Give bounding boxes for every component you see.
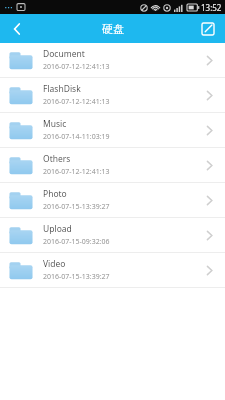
staticText: 2016-07-14-11:03:19 [43,132,110,142]
button[interactable]: Video [0,253,225,287]
staticText: Photo [43,188,67,200]
staticText: 13:52 [201,2,222,13]
button[interactable]: Photo [0,183,225,217]
button[interactable]: Others [0,148,225,182]
staticText: Others [43,153,71,165]
staticText: 2016-07-15-13:39:27 [43,272,110,282]
staticText: Video [43,258,66,270]
staticText: Music [43,118,67,130]
staticText: Upload [43,223,72,235]
staticText: FlashDisk [43,83,81,95]
staticText: Document [43,48,85,60]
button[interactable]: Upload [0,218,225,252]
staticText: 2016-07-15-09:32:06 [43,237,110,247]
button[interactable]: FlashDisk [0,78,225,112]
button[interactable]: Back [0,14,34,43]
staticText: 2016-07-12-12:41:13 [43,97,110,107]
staticText: 2016-07-12-12:41:13 [43,167,110,177]
staticText: 2016-07-15-13:39:27 [43,202,110,212]
button[interactable]: Document [0,43,225,77]
button[interactable]: Music [0,113,225,147]
staticText: 2016-07-12-12:41:13 [43,62,110,72]
staticText: 硬盘 [102,22,124,36]
button[interactable]: Edit [191,14,225,43]
